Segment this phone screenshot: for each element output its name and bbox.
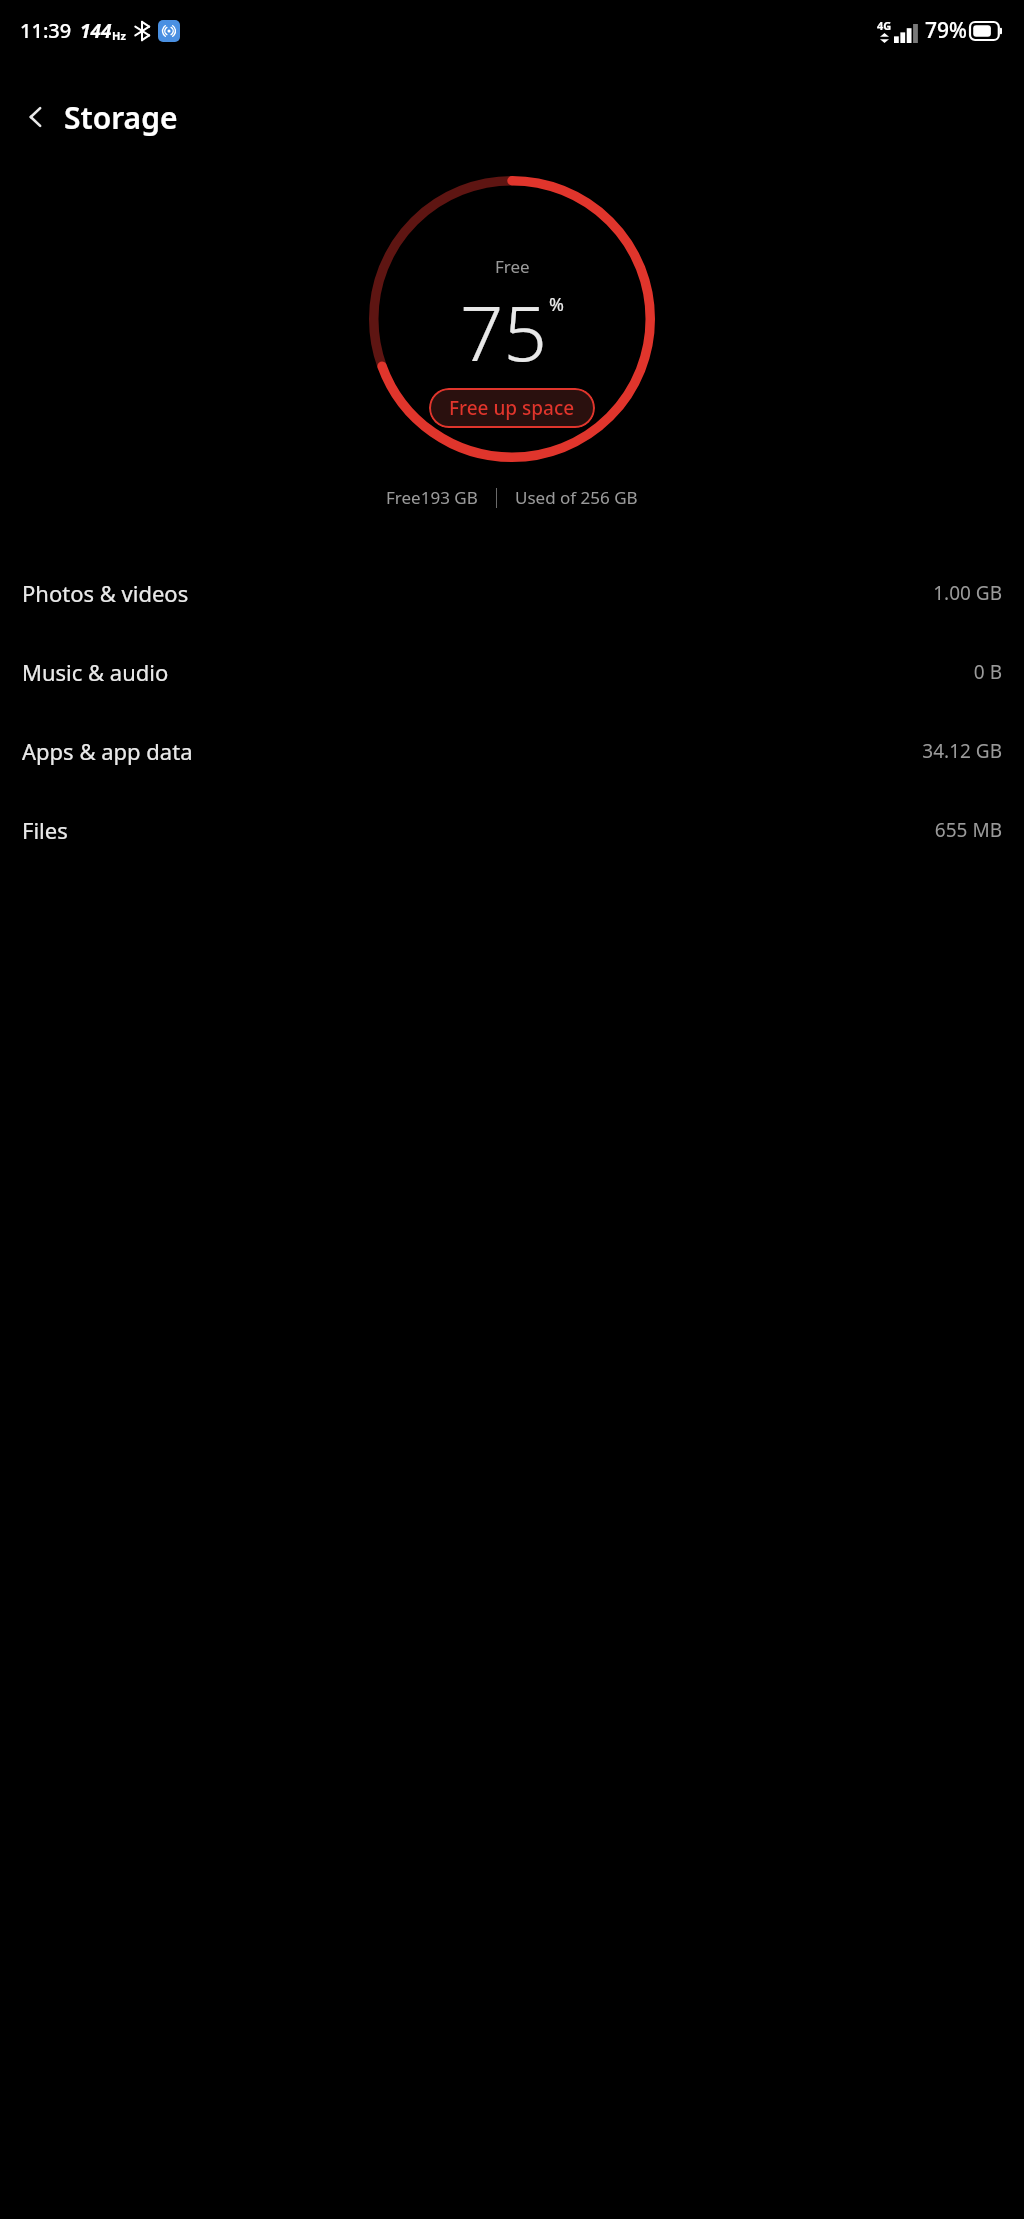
staticText: Music & audio	[22, 657, 169, 687]
staticText: 79%	[925, 16, 967, 45]
staticText: %	[549, 292, 564, 317]
staticText: Hz	[112, 28, 126, 43]
staticText: 0 B	[973, 659, 1002, 685]
staticText: 11:39	[20, 17, 72, 44]
staticText: Used of 256 GB	[515, 486, 638, 509]
staticText: Free up space	[449, 395, 575, 421]
button[interactable]: Free up space	[429, 388, 595, 428]
staticText: 144	[80, 18, 112, 44]
staticText: 34.12 GB	[922, 738, 1002, 764]
staticText: 4G	[877, 18, 892, 33]
staticText: Free	[495, 255, 530, 278]
staticText: 75	[460, 280, 547, 384]
button[interactable]: Apps & app data	[0, 711, 1024, 790]
staticText: 655 MB	[934, 817, 1002, 843]
button[interactable]: Files	[0, 790, 1024, 869]
staticText: Files	[22, 815, 68, 845]
staticText: Storage	[64, 97, 178, 138]
staticText: Apps & app data	[22, 736, 193, 766]
button[interactable]: Back	[14, 95, 58, 139]
staticText: 1.00 GB	[933, 580, 1002, 606]
staticText: Photos & videos	[22, 578, 189, 608]
staticText: Free193 GB	[386, 486, 478, 509]
button[interactable]: Music & audio	[0, 632, 1024, 711]
button[interactable]: Photos & videos	[0, 553, 1024, 632]
